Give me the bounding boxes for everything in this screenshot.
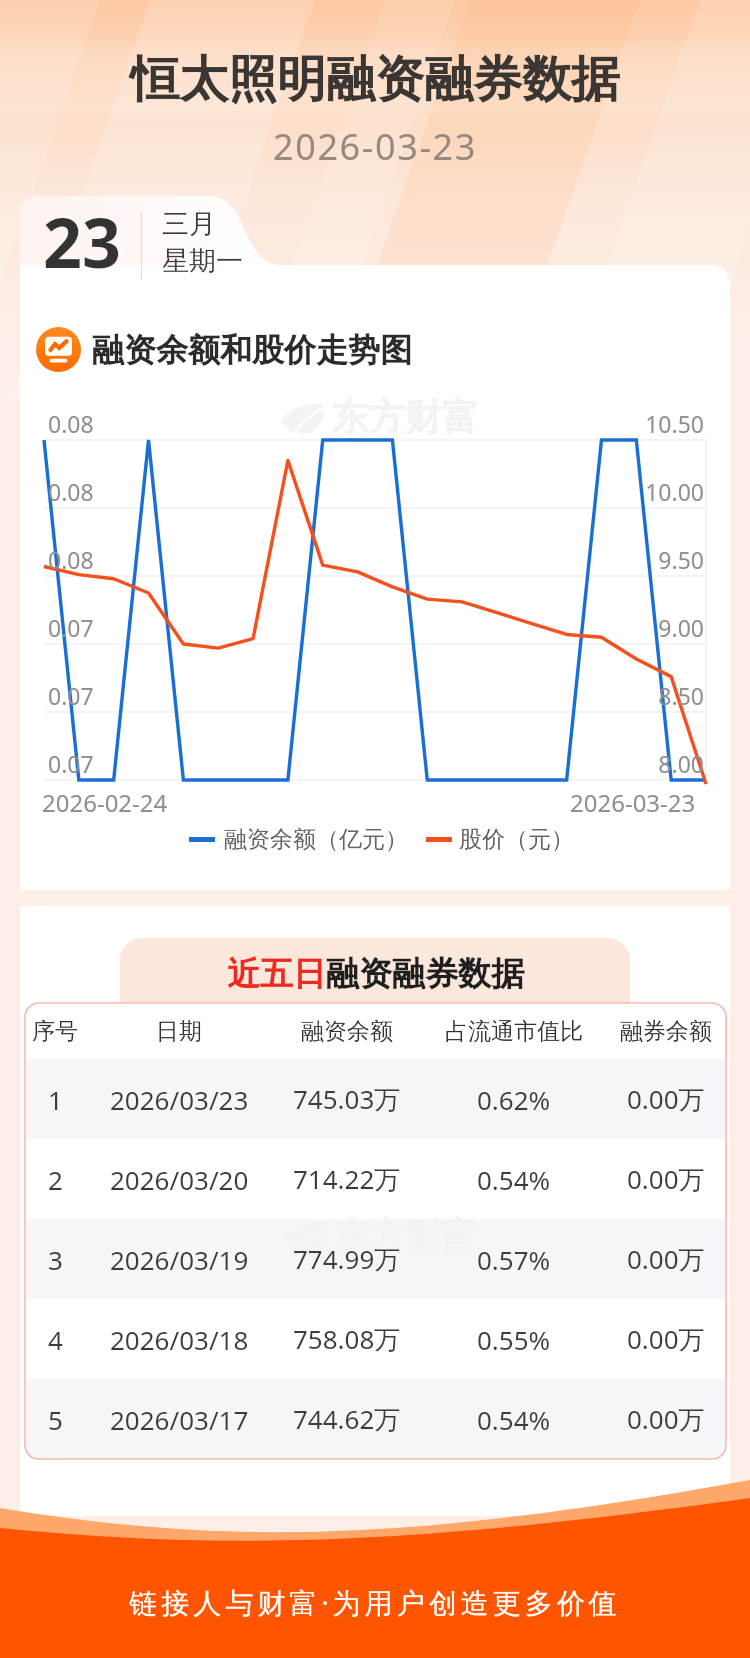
staticText: 758.08万 <box>293 1321 401 1357</box>
staticText: 融券余额 <box>620 1017 712 1046</box>
staticText: 融资余额（亿元） <box>224 825 408 854</box>
staticText: 0.00万 <box>627 1321 705 1357</box>
staticText: 714.22万 <box>293 1161 401 1197</box>
staticText: 0.08 <box>48 408 94 439</box>
button[interactable]: 1 <box>25 1059 726 1139</box>
staticText: 0.08 <box>48 476 94 507</box>
staticText: 10.50 <box>624 408 704 439</box>
staticText: 0.00万 <box>627 1161 705 1197</box>
button[interactable]: 2 <box>25 1139 726 1219</box>
staticText: 近五日 <box>227 953 326 995</box>
staticText: 0.57% <box>477 1242 551 1277</box>
staticText: 10.00 <box>624 476 704 507</box>
button[interactable]: 趋势图 <box>36 327 412 372</box>
staticText: 2026/03/19 <box>110 1242 249 1277</box>
staticText: 0.54% <box>477 1162 551 1197</box>
staticText: 0.00万 <box>627 1241 705 1277</box>
button[interactable]: 3 <box>25 1219 726 1299</box>
staticText: 23 <box>43 195 121 288</box>
staticText: 0.00万 <box>627 1081 705 1117</box>
staticText: 0.62% <box>477 1082 551 1117</box>
staticText: 股价（元） <box>459 825 574 854</box>
button[interactable]: 4 <box>25 1299 726 1379</box>
staticText: 融资余额和股价走势图 <box>92 330 412 370</box>
staticText: 0.08 <box>48 544 94 575</box>
button[interactable]: 近五日 <box>120 938 630 1003</box>
staticText: 745.03万 <box>293 1081 401 1117</box>
staticText: 日期 <box>156 1017 202 1046</box>
other: 趋势图 <box>36 327 81 372</box>
staticText: 占流通市值比 <box>445 1017 583 1046</box>
staticText: 2026-03-23 <box>0 122 750 171</box>
staticText: 8.00 <box>624 748 704 779</box>
staticText: 链接人与财富·为用户创造更多价值 <box>0 1583 750 1621</box>
staticText: 0.54% <box>477 1402 551 1437</box>
staticText: 2026-03-23 <box>570 786 696 819</box>
staticText: 0.00万 <box>627 1401 705 1437</box>
staticText: 1 <box>48 1082 63 1117</box>
button[interactable]: 5 <box>25 1379 726 1459</box>
staticText: 序号 <box>32 1017 78 1046</box>
staticText: 2026-02-24 <box>42 786 168 819</box>
staticText: 4 <box>48 1322 63 1357</box>
staticText: 5 <box>48 1402 63 1437</box>
staticText: 2026/03/20 <box>110 1162 249 1197</box>
staticText: 0.55% <box>477 1322 551 1357</box>
staticText: 2026/03/23 <box>110 1082 249 1117</box>
staticText: 3 <box>48 1242 63 1277</box>
staticText: 星期一 <box>162 244 243 278</box>
staticText: 0.07 <box>48 680 94 711</box>
staticText: 774.99万 <box>293 1241 401 1277</box>
staticText: 2026/03/17 <box>110 1402 249 1437</box>
staticText: 0.07 <box>48 748 94 779</box>
staticText: 融资融券数据 <box>326 953 524 995</box>
staticText: 2026/03/18 <box>110 1322 249 1357</box>
staticText: 2 <box>48 1162 63 1197</box>
staticText: 融资余额 <box>301 1017 393 1046</box>
staticText: 三月 <box>162 207 216 241</box>
staticText: 东方财富 <box>331 394 479 441</box>
staticText: 8.50 <box>624 680 704 711</box>
staticText: 9.00 <box>624 612 704 643</box>
staticText: 0.07 <box>48 612 94 643</box>
staticText: 恒太照明融资融券数据 <box>0 49 750 111</box>
staticText: 9.50 <box>624 544 704 575</box>
staticText: 东方财富 <box>334 1213 478 1258</box>
staticText: 744.62万 <box>293 1401 401 1437</box>
